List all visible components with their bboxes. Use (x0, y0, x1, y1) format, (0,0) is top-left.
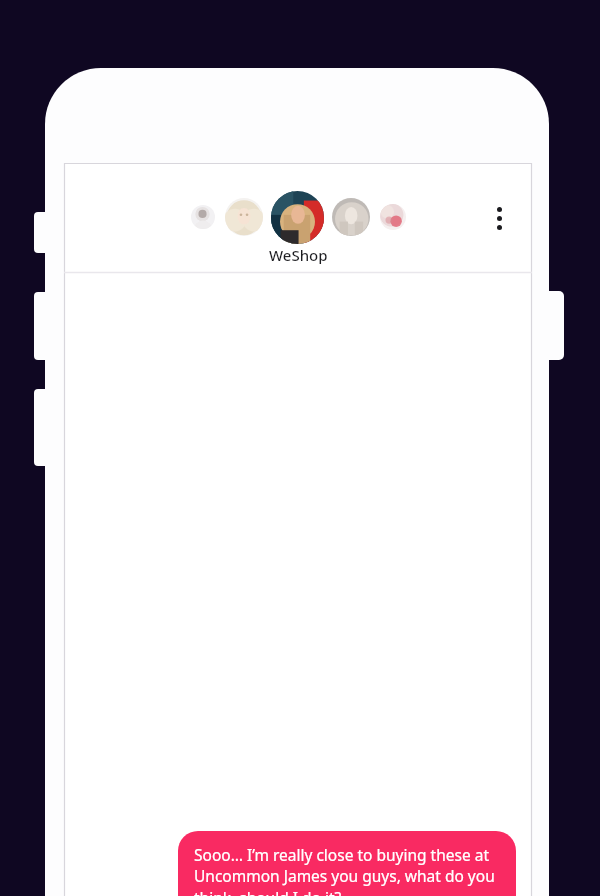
button[interactable]: Story (380, 204, 406, 230)
button[interactable]: Story (191, 205, 215, 229)
staticText: Sooo… I’m really close to buying these a… (194, 844, 500, 896)
staticText: WeShop (269, 245, 328, 265)
button[interactable]: Story (271, 191, 324, 244)
button[interactable]: Story (332, 198, 370, 236)
button[interactable]: More options (478, 197, 520, 239)
button[interactable]: Sooo… I’m really close to buying these a… (178, 831, 516, 896)
button[interactable]: Story (225, 198, 263, 236)
